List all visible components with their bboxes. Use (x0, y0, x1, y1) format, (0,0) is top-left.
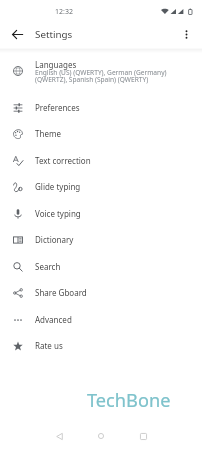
staticText: Settings (35, 28, 73, 41)
button[interactable]: Advanced (0, 306, 202, 333)
button[interactable]: Dictionary (0, 226, 202, 253)
staticText: Text correction (35, 155, 91, 166)
button[interactable]: More options (174, 22, 198, 46)
staticText: Share Gboard (35, 287, 87, 298)
staticText: TechBone (87, 388, 171, 413)
button[interactable]: Back (47, 424, 71, 448)
button[interactable]: Preferences (0, 94, 202, 121)
button[interactable]: Rate us (0, 332, 202, 359)
staticText: Dictionary (35, 234, 74, 245)
staticText: Search (35, 261, 61, 272)
staticText: (QWERTZ), Spanish (Spain) (QWERTY) (35, 75, 149, 84)
staticText: Advanced (35, 314, 72, 325)
button[interactable]: Languages (0, 55, 202, 89)
button[interactable]: Voice typing (0, 200, 202, 227)
staticText: English (US) (QWERTY), German (Germany) (35, 68, 167, 77)
staticText: Preferences (35, 102, 80, 113)
button[interactable]: Back (5, 22, 29, 46)
staticText: Languages (35, 59, 77, 70)
staticText: Glide typing (35, 181, 81, 192)
button[interactable]: Glide typing (0, 173, 202, 200)
staticText: 12:32 (55, 7, 73, 17)
button[interactable]: Share Gboard (0, 279, 202, 306)
staticText: Rate us (35, 340, 63, 351)
button[interactable]: Search (0, 253, 202, 280)
button[interactable]: Theme (0, 120, 202, 147)
button[interactable]: Recent apps (131, 424, 155, 448)
button[interactable]: Text correction (0, 147, 202, 174)
staticText: Theme (35, 128, 61, 139)
staticText: Voice typing (35, 208, 81, 219)
button[interactable]: Home (89, 424, 113, 448)
